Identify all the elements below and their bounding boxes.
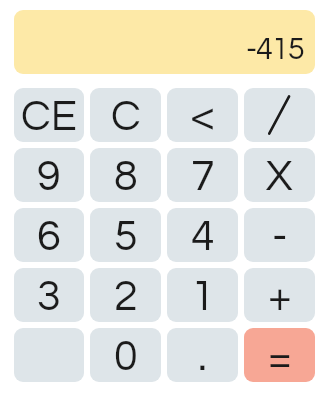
button[interactable]: C (90, 88, 161, 142)
staticText: 0 (114, 335, 138, 379)
button[interactable]: X (244, 148, 315, 202)
staticText: 3 (37, 275, 61, 319)
staticText: 6 (37, 215, 61, 259)
button[interactable]: 8 (90, 148, 161, 202)
button[interactable]: 3 (14, 268, 84, 322)
button[interactable]: 2 (90, 268, 161, 322)
button[interactable]: 9 (14, 148, 84, 202)
button[interactable]: 1 (167, 268, 238, 322)
staticText: 5 (114, 215, 138, 259)
staticText: -415 (246, 34, 304, 66)
staticText: . (198, 335, 207, 379)
button[interactable]: CE (14, 88, 84, 142)
button[interactable] (244, 88, 315, 142)
button[interactable]: 0 (90, 328, 161, 382)
staticText: < (191, 95, 215, 139)
button[interactable]: 4 (167, 208, 238, 262)
button[interactable]: 5 (90, 208, 161, 262)
button[interactable]: + (244, 268, 315, 322)
staticText: X (266, 155, 293, 199)
staticText: 9 (37, 155, 61, 199)
staticText: 7 (191, 155, 215, 199)
button[interactable] (14, 328, 84, 382)
staticText: + (268, 275, 292, 319)
button[interactable]: < (167, 88, 238, 142)
button[interactable]: . (167, 328, 238, 382)
staticText: - (272, 215, 288, 259)
button[interactable]: 6 (14, 208, 84, 262)
button[interactable]: -415 (14, 10, 315, 74)
staticText: 8 (114, 155, 138, 199)
button[interactable]: = (244, 328, 315, 382)
staticText: = (268, 336, 292, 380)
button[interactable]: - (244, 208, 315, 262)
staticText: CE (21, 95, 77, 139)
staticText: 4 (191, 215, 215, 259)
staticText: 1 (191, 275, 215, 319)
button[interactable]: 7 (167, 148, 238, 202)
staticText: C (111, 95, 141, 139)
staticText: 2 (114, 275, 138, 319)
